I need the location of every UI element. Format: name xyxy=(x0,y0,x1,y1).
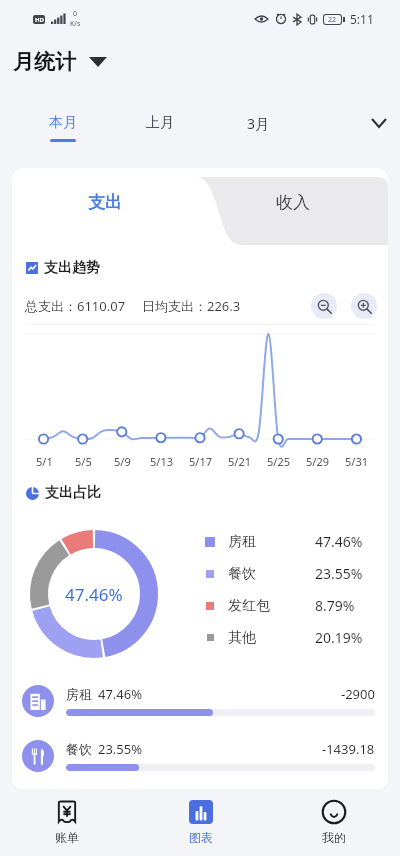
staticText: 支出趋势 xyxy=(44,259,100,277)
staticText: 47.46% xyxy=(65,583,123,606)
staticText: 23.55% xyxy=(98,740,143,758)
staticText: 23.55% xyxy=(315,564,363,583)
staticText: 5/9 xyxy=(114,454,131,469)
staticText: 房租 xyxy=(228,533,256,551)
staticText: 本月 xyxy=(49,114,77,132)
staticText: 支出占比 xyxy=(45,484,101,502)
staticText: 8.79% xyxy=(315,596,355,615)
staticText: 总支出：6110.07 xyxy=(25,297,126,315)
staticText: 20.19% xyxy=(315,628,363,647)
staticText: 5/5 xyxy=(75,454,92,469)
button[interactable]: 上月 xyxy=(111,86,209,168)
staticText: 上月 xyxy=(146,114,174,132)
staticText: K/s xyxy=(70,19,81,29)
staticText: 5/21 xyxy=(228,454,251,469)
button[interactable]: 我的 xyxy=(267,789,400,856)
staticText: 月统计 xyxy=(13,49,76,75)
staticText: 0 xyxy=(73,9,78,19)
staticText: -1439.18 xyxy=(322,740,375,758)
staticText: 3月 xyxy=(247,114,270,133)
staticText: 其他 xyxy=(228,629,256,647)
button[interactable]: 账单 xyxy=(0,789,134,856)
staticText: 房租 xyxy=(66,686,92,702)
button[interactable]: 月统计 xyxy=(13,49,107,75)
staticText: 支出 xyxy=(88,192,122,213)
button[interactable]: 缩小 xyxy=(311,293,337,319)
staticText: 日均支出：226.3 xyxy=(142,297,241,315)
staticText: 餐饮 xyxy=(66,741,92,757)
staticText: 5:11 xyxy=(350,11,374,27)
button[interactable]: 支出 xyxy=(12,168,198,236)
button[interactable]: 收入 xyxy=(198,168,388,236)
staticText: 5/25 xyxy=(267,454,290,469)
staticText: 47.46% xyxy=(315,532,363,551)
staticText: 图表 xyxy=(189,830,213,845)
staticText: HD xyxy=(35,16,44,24)
staticText: 我的 xyxy=(322,830,346,845)
staticText: 5/13 xyxy=(150,454,173,469)
button[interactable]: 放大 xyxy=(351,293,377,319)
button[interactable]: 本月 xyxy=(15,86,111,168)
button[interactable]: 餐饮 xyxy=(12,728,388,783)
staticText: 5/17 xyxy=(189,454,212,469)
staticText: 收入 xyxy=(276,192,310,213)
staticText: 22 xyxy=(328,15,337,24)
staticText: 5/1 xyxy=(36,454,53,469)
staticText: -2900 xyxy=(341,685,375,703)
button[interactable]: 房租 xyxy=(12,673,388,728)
staticText: 账单 xyxy=(55,830,79,845)
staticText: 5/31 xyxy=(345,454,368,469)
button[interactable]: 展开 xyxy=(307,86,400,168)
staticText: 5/29 xyxy=(306,454,329,469)
button[interactable]: 图表 xyxy=(134,789,267,856)
button[interactable]: 3月 xyxy=(209,86,307,168)
staticText: 发红包 xyxy=(228,597,270,615)
staticText: 47.46% xyxy=(98,685,143,703)
staticText: 餐饮 xyxy=(228,565,256,583)
